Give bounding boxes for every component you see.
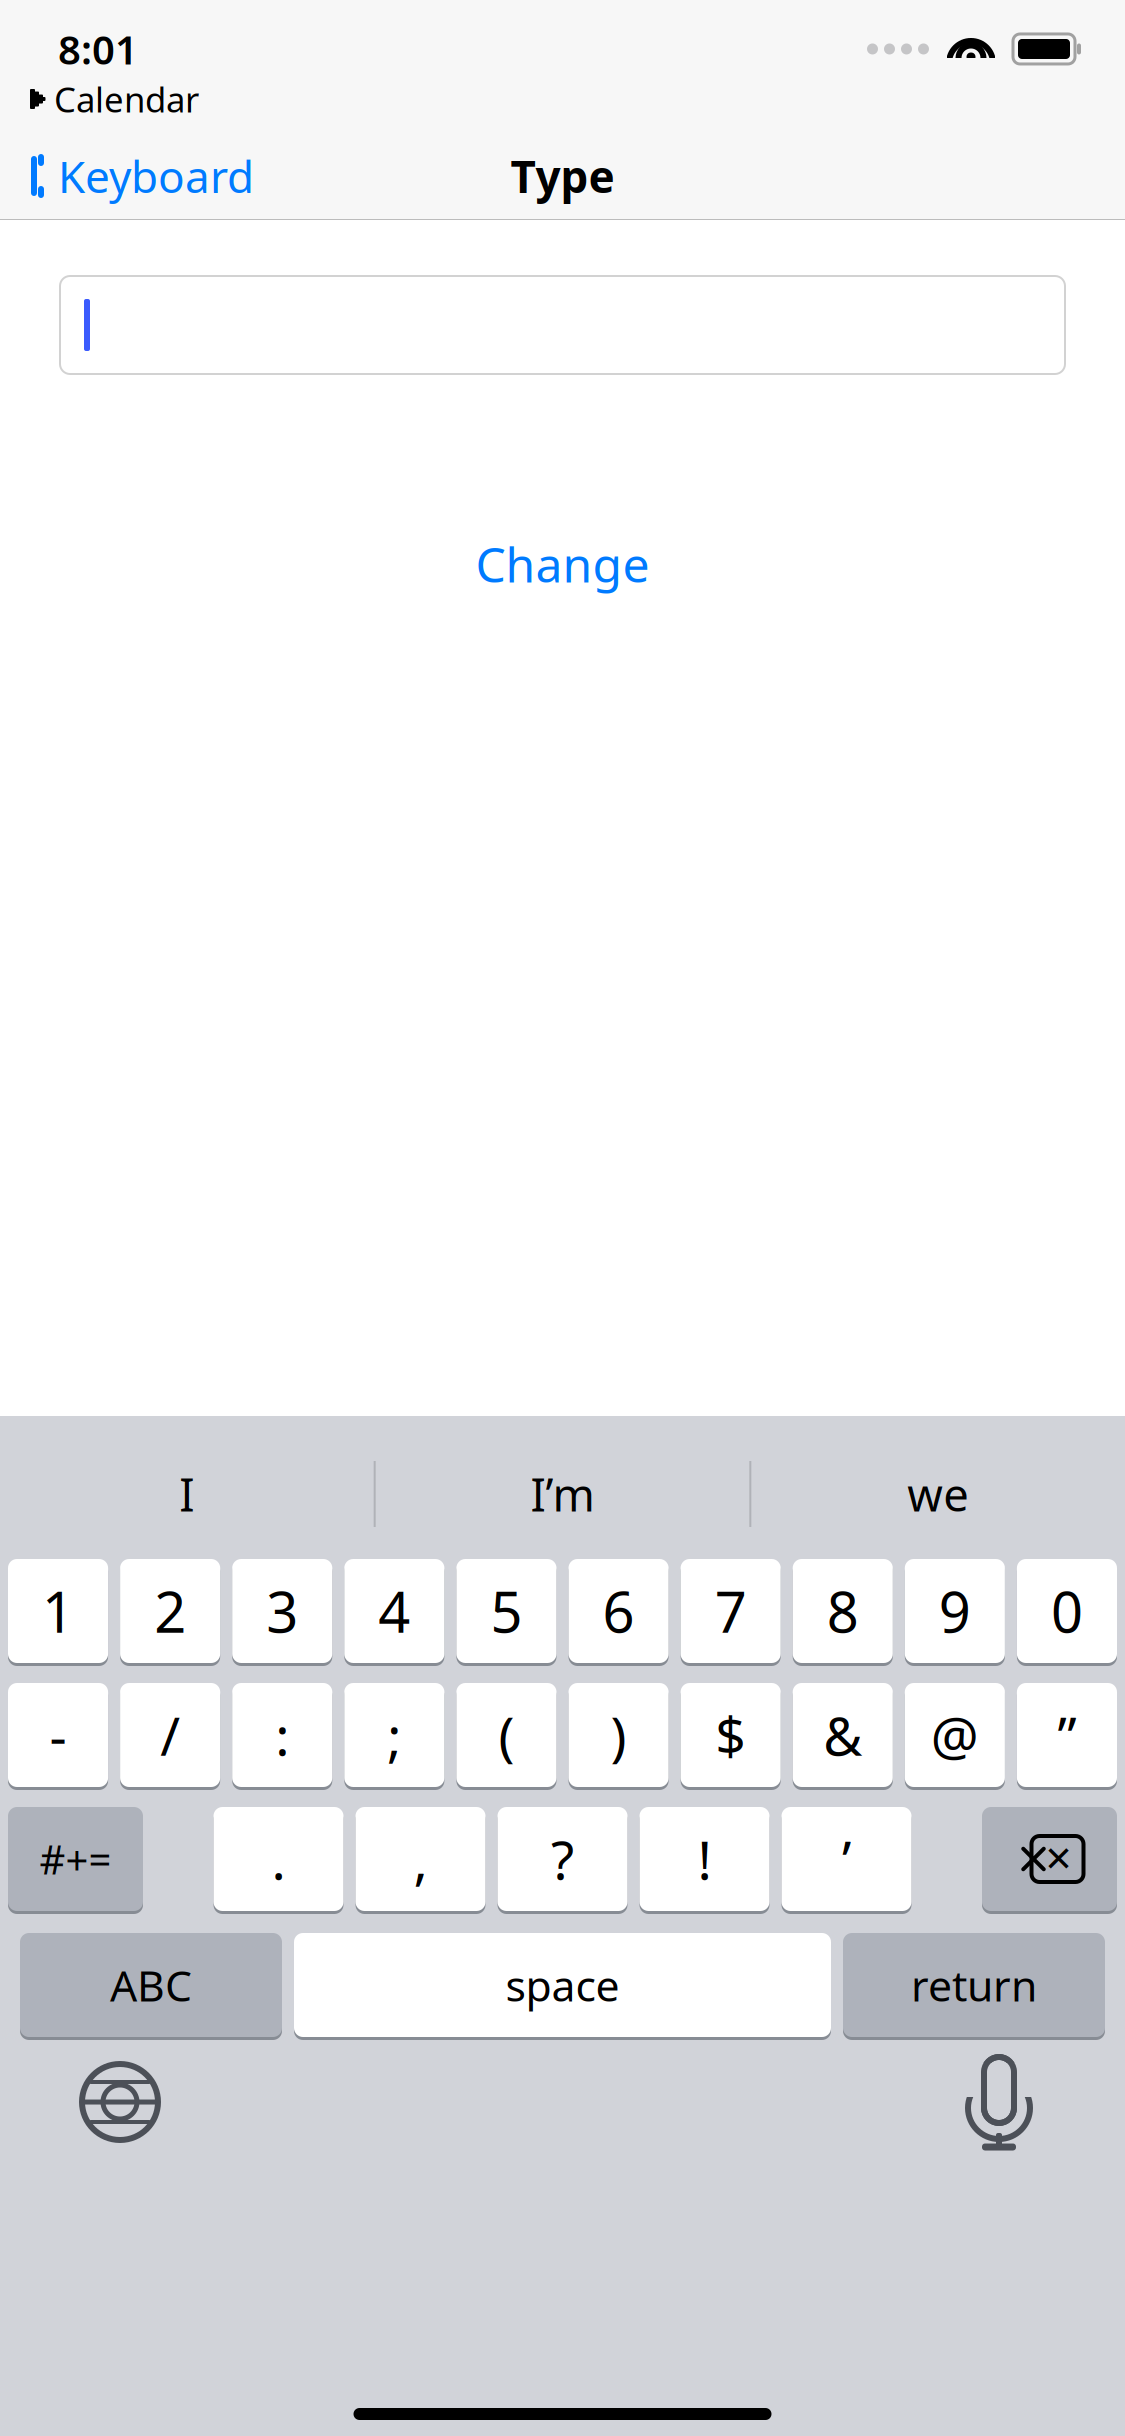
button[interactable]: return: [843, 1930, 1105, 2040]
button[interactable]: !: [639, 1804, 769, 1914]
staticText: 8:01: [58, 22, 138, 75]
button[interactable]: Change: [435, 516, 689, 612]
button[interactable]: ABC: [20, 1930, 282, 2040]
staticText: ,: [413, 1824, 427, 1894]
button[interactable]: ”: [1017, 1680, 1117, 1790]
button[interactable]: 4: [344, 1556, 444, 1666]
staticText: I: [179, 1464, 194, 1524]
staticText: ’: [842, 1824, 851, 1894]
staticText: ✕: [1044, 1839, 1073, 1879]
staticText: 6: [602, 1574, 634, 1648]
staticText: 4: [378, 1574, 410, 1648]
button[interactable]: I’m: [376, 1446, 749, 1542]
staticText: .: [271, 1824, 285, 1894]
staticText: 7: [715, 1574, 747, 1648]
staticText: Calendar: [54, 76, 199, 122]
button[interactable]: we: [751, 1446, 1125, 1542]
staticText: 2: [154, 1574, 186, 1648]
staticText: return: [911, 1957, 1037, 2013]
staticText: 0: [1051, 1574, 1083, 1648]
button[interactable]: /: [120, 1680, 220, 1790]
staticText: 5: [490, 1574, 522, 1648]
button[interactable]: Keyboard: [0, 137, 254, 215]
button[interactable]: 5: [456, 1556, 556, 1666]
staticText: &: [823, 1700, 862, 1770]
button[interactable]: Next keyboard: [0, 2054, 168, 2150]
staticText: Type: [510, 147, 614, 205]
button[interactable]: space: [294, 1930, 831, 2040]
button[interactable]: @: [905, 1680, 1005, 1790]
button[interactable]: ,: [355, 1804, 485, 1914]
button[interactable]: ?: [497, 1804, 627, 1914]
button[interactable]: I: [0, 1446, 374, 1542]
button[interactable]: Delete: [982, 1804, 1117, 1914]
staticText: 1: [42, 1574, 74, 1648]
staticText: #+=: [39, 1832, 111, 1885]
button[interactable]: ;: [344, 1680, 444, 1790]
button[interactable]: 0: [1017, 1556, 1117, 1666]
staticText: we: [907, 1464, 969, 1524]
staticText: /: [160, 1700, 180, 1770]
staticText: Change: [475, 532, 649, 596]
staticText: $: [715, 1700, 746, 1770]
staticText: I’m: [530, 1464, 594, 1524]
staticText: Keyboard: [58, 147, 254, 205]
staticText: ABC: [110, 1957, 192, 2013]
button[interactable]: 6: [568, 1556, 669, 1666]
button[interactable]: ’: [781, 1804, 911, 1914]
staticText: ;: [387, 1700, 401, 1770]
button[interactable]: .: [213, 1804, 343, 1914]
staticText: !: [697, 1824, 711, 1894]
staticText: 3: [266, 1574, 298, 1648]
button[interactable]: 8: [793, 1556, 893, 1666]
button[interactable]: 3: [232, 1556, 332, 1666]
button[interactable]: 2: [120, 1556, 220, 1666]
staticText: ”: [1057, 1700, 1076, 1770]
button[interactable]: 1: [8, 1556, 108, 1666]
button[interactable]: 7: [681, 1556, 781, 1666]
button[interactable]: &: [793, 1680, 893, 1790]
button[interactable]: 9: [905, 1556, 1005, 1666]
staticText: 9: [939, 1574, 971, 1648]
button[interactable]: (: [456, 1680, 556, 1790]
staticText: space: [505, 1957, 619, 2013]
staticText: @: [931, 1700, 979, 1770]
button[interactable]: :: [232, 1680, 332, 1790]
staticText: ): [610, 1700, 626, 1770]
button[interactable]: -: [8, 1680, 108, 1790]
staticText: ?: [551, 1824, 574, 1894]
staticText: -: [49, 1700, 66, 1770]
staticText: 8: [827, 1574, 859, 1648]
button[interactable]: $: [681, 1680, 781, 1790]
button[interactable]: Dictation: [951, 2054, 1125, 2150]
staticText: (: [498, 1700, 514, 1770]
staticText: :: [275, 1700, 289, 1770]
button[interactable]: ): [568, 1680, 669, 1790]
button[interactable]: #+=: [8, 1804, 143, 1914]
